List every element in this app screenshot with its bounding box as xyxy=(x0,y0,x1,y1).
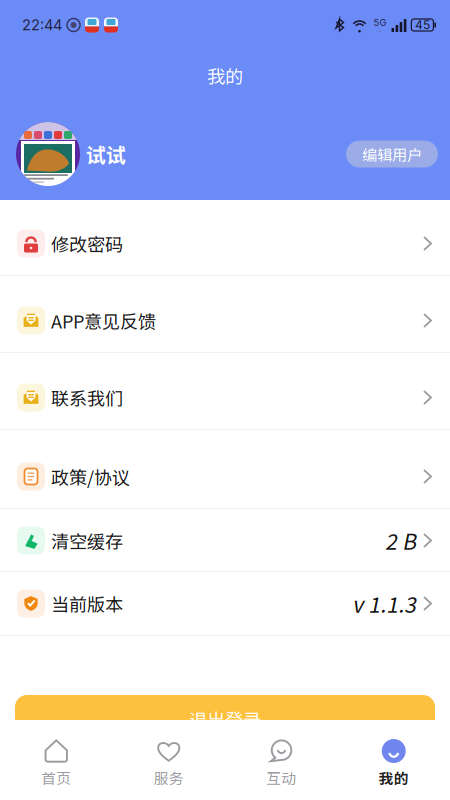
button[interactable]: 修改密码 xyxy=(0,200,450,276)
staticText: 45 xyxy=(415,18,430,32)
button[interactable]: 退出登录 xyxy=(15,695,435,743)
button[interactable]: 编辑用户 xyxy=(346,140,438,167)
button[interactable]: APP意见反馈 xyxy=(0,276,450,353)
staticText: 当前版本 xyxy=(51,590,123,617)
staticText: 联系我们 xyxy=(51,384,123,411)
staticText: 22:44 xyxy=(22,16,62,34)
staticText: v 1.1.3 xyxy=(352,588,416,619)
button[interactable]: 清空缓存 xyxy=(0,509,450,572)
staticText: 首页 xyxy=(41,767,71,788)
staticText: 2 B xyxy=(385,525,416,556)
staticText: 我的 xyxy=(207,62,243,89)
button[interactable]: 当前版本 xyxy=(0,572,450,636)
staticText: 清空缓存 xyxy=(51,527,123,554)
staticText: 编辑用户 xyxy=(362,143,422,165)
staticText: 互动 xyxy=(266,767,296,788)
staticText: ^ xyxy=(378,28,381,36)
staticText: 政策/协议 xyxy=(51,463,130,490)
button[interactable]: 我的 xyxy=(337,720,450,800)
staticText: 我的 xyxy=(379,767,409,788)
staticText: 修改密码 xyxy=(51,230,123,257)
staticText: APP意见反馈 xyxy=(51,307,156,334)
button[interactable]: 首页 xyxy=(0,720,112,800)
button[interactable]: 政策/协议 xyxy=(0,430,450,509)
staticText: 服务 xyxy=(154,767,184,788)
staticText: 试试 xyxy=(86,139,126,168)
staticText: 退出登录 xyxy=(189,706,261,732)
button[interactable]: 互动 xyxy=(225,720,337,800)
button[interactable]: 联系我们 xyxy=(0,353,450,430)
button[interactable]: 服务 xyxy=(112,720,225,800)
staticText: 5G xyxy=(373,17,386,28)
